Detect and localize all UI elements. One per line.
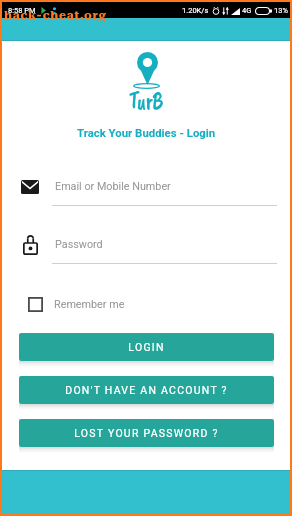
staticText: TurB — [129, 84, 163, 117]
staticText: Password — [55, 238, 103, 251]
staticText: LOGIN — [128, 341, 165, 353]
button[interactable]: LOST YOUR PASSWORD ? — [19, 419, 274, 447]
button[interactable]: Password — [52, 234, 277, 264]
staticText: 1.20K/s — [182, 6, 209, 15]
staticText: Track Your Buddies - Login — [77, 126, 216, 139]
staticText: 4G — [242, 6, 252, 15]
staticText: 8:58 PM — [8, 6, 36, 15]
staticText: DON'T HAVE AN ACCOUNT ? — [65, 384, 228, 396]
button[interactable]: Email or Mobile Number — [52, 176, 277, 206]
staticText: hack-cheat.org — [4, 8, 107, 22]
button[interactable]: LOGIN — [19, 333, 274, 361]
button[interactable]: DON'T HAVE AN ACCOUNT ? — [19, 376, 274, 404]
staticText: Email or Mobile Number — [55, 180, 171, 193]
staticText: 13% — [274, 6, 288, 15]
button[interactable]: Remember me — [28, 297, 125, 312]
staticText: Remember me — [54, 298, 125, 311]
staticText: LOST YOUR PASSWORD ? — [74, 427, 219, 439]
